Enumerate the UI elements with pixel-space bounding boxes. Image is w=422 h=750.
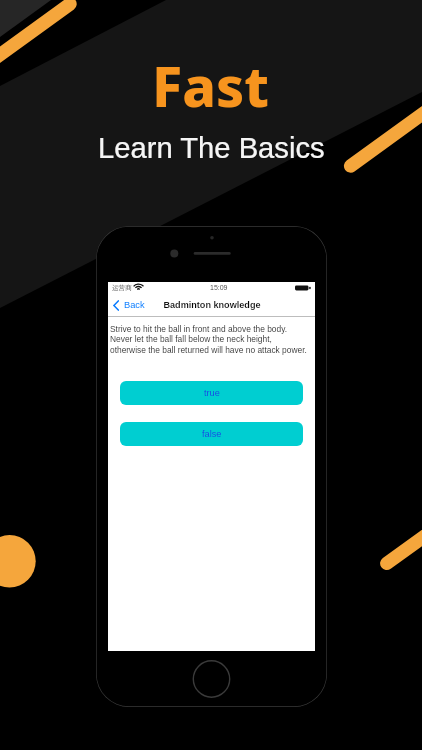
staticText: 运营商 [112,284,132,292]
button[interactable]: false [120,422,303,446]
staticText: false [202,429,222,439]
staticText: Fast [152,48,270,124]
staticText: Badminton knowledge [163,300,261,310]
staticText: 15:09 [210,284,228,292]
staticText: Back [124,300,145,310]
staticText: Learn The Basics [98,132,325,165]
button[interactable]: Back [113,294,145,316]
staticText: true [204,388,220,398]
button[interactable]: true [120,381,303,405]
staticText: Strive to hit the ball in front and abov… [110,324,307,355]
